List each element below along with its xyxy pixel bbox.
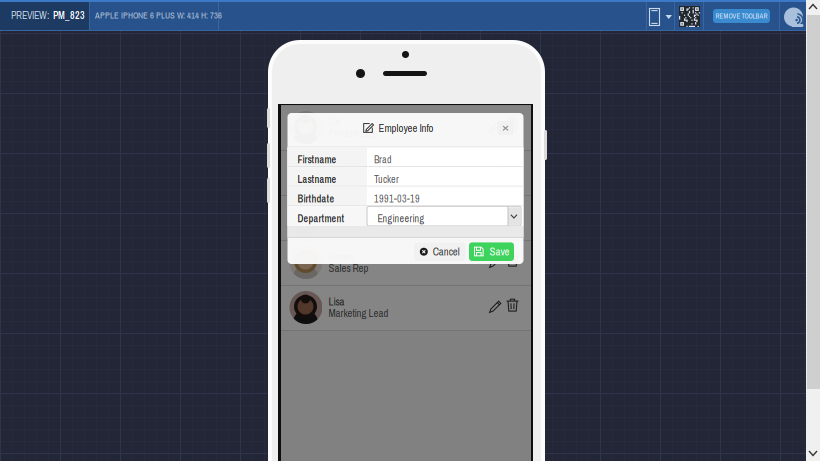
- staticText: Brad: [374, 153, 392, 166]
- staticText: Tucker: [328, 159, 354, 174]
- button[interactable]: REMOVE TOOLBAR: [713, 9, 770, 23]
- staticText: Architect: [328, 216, 361, 230]
- button[interactable]: Close: [497, 121, 513, 135]
- staticText: PREVIEW:: [11, 9, 49, 22]
- button[interactable]: Lisa: [281, 286, 531, 331]
- staticText: Vincent: [328, 204, 357, 219]
- staticText: Lastname: [297, 173, 336, 186]
- staticText: Product Lead: [328, 126, 380, 140]
- staticText: 1991-03-19: [374, 192, 420, 206]
- staticText: Tucker: [374, 173, 399, 186]
- button[interactable]: Scroll down: [806, 446, 820, 461]
- staticText: Save: [489, 244, 509, 259]
- button[interactable]: Brown: [281, 241, 531, 286]
- button[interactable]: Cancel: [414, 242, 466, 261]
- staticText: Firstname: [297, 153, 336, 166]
- button[interactable]: Tucker: [281, 151, 531, 196]
- button[interactable]: PREVIEW:: [0, 0, 89, 31]
- staticText: Birthdate: [297, 192, 334, 206]
- button[interactable]: Scroll up: [806, 0, 820, 15]
- button[interactable]: Vincent: [281, 196, 531, 241]
- staticText: Lisa: [328, 294, 344, 309]
- staticText: Sales Rep: [328, 261, 368, 275]
- staticText: Department: [297, 212, 344, 225]
- button[interactable]: Open BrowserStack: [780, 2, 807, 31]
- button[interactable]: Save: [469, 242, 514, 261]
- staticText: PM_823: [53, 9, 85, 22]
- button[interactable]: Show QR code: [675, 2, 704, 31]
- staticText: Cancel: [433, 244, 460, 259]
- staticText: REMOVE TOOLBAR: [715, 11, 767, 20]
- staticText: Engineer: [328, 171, 364, 185]
- staticText: Employee Info: [378, 121, 433, 135]
- staticText: Marketing Lead: [328, 306, 388, 320]
- button[interactable]: Engineering: [367, 206, 521, 226]
- staticText: Engineering: [377, 212, 424, 225]
- staticText: APPLE IPHONE 6 PLUS W: 414 H: 736: [95, 10, 222, 21]
- button[interactable]: Lin: [281, 106, 531, 151]
- button[interactable]: Choose device: [647, 2, 675, 31]
